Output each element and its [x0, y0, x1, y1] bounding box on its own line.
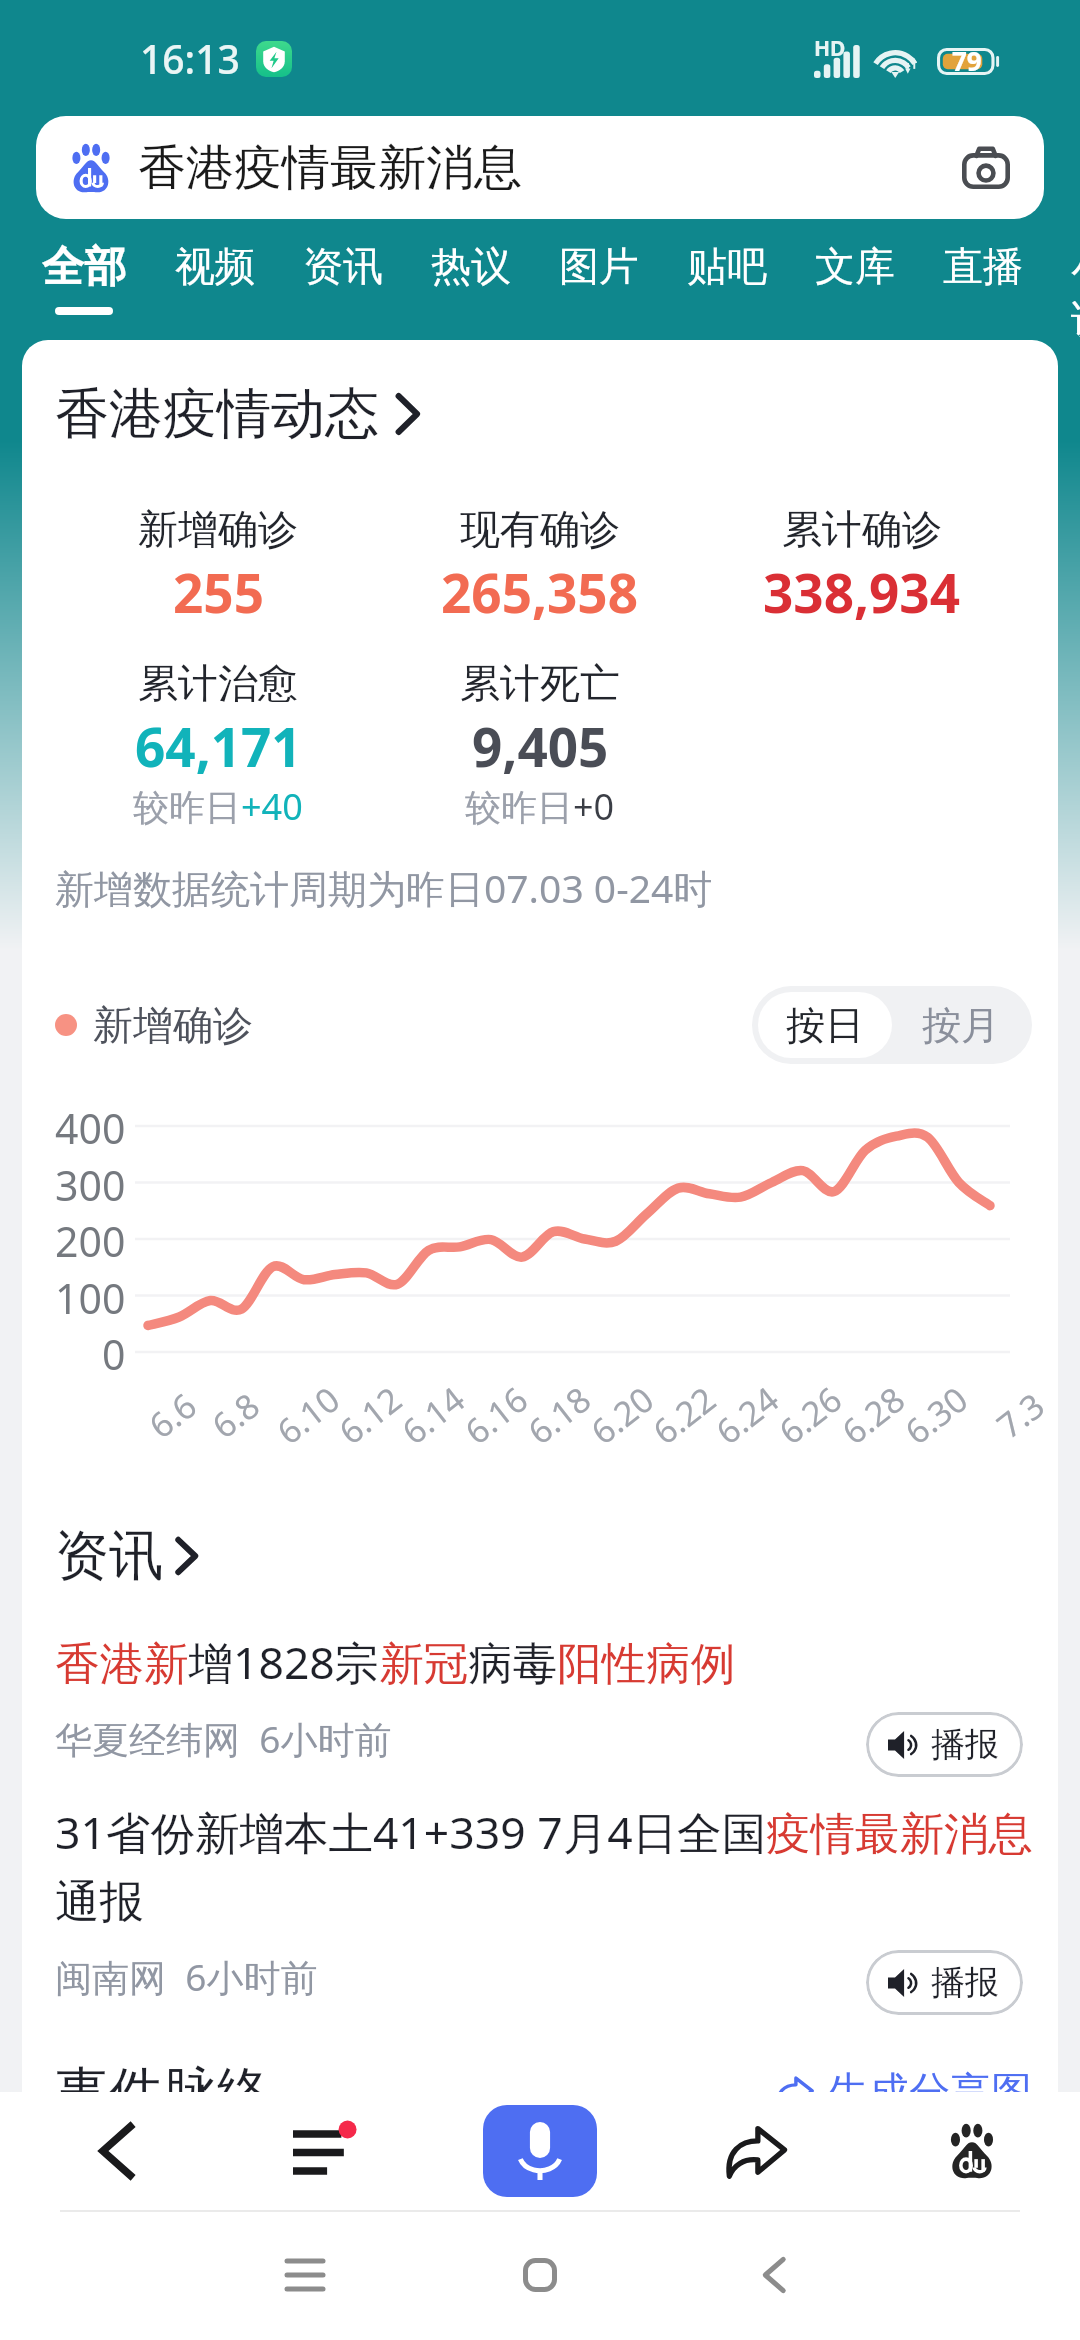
staticText: 6.22 [643, 1376, 725, 1454]
button[interactable]: Voice search [432, 2092, 648, 2210]
staticText: 0 [102, 1326, 126, 1378]
button[interactable]: 香港疫情动态 [55, 380, 419, 448]
button[interactable]: 播报 [866, 1950, 1023, 2015]
button[interactable]: 直播 [943, 226, 1023, 340]
staticText: 6.6 [139, 1382, 206, 1448]
staticText: 较昨日+0 [465, 782, 615, 831]
staticText: 华夏经纬网 6小时前 [55, 1713, 392, 1764]
staticText: 6.16 [455, 1376, 537, 1454]
staticText: 新增确诊 [138, 504, 298, 554]
staticText: 6.20 [581, 1376, 663, 1454]
staticText: 香港疫情最新消息 [138, 138, 522, 198]
staticText: 300 [55, 1157, 126, 1209]
staticText: 6.18 [518, 1376, 600, 1454]
staticText: 新增确诊 [93, 1000, 253, 1050]
staticText: 6.8 [202, 1382, 269, 1448]
staticText: 400 [55, 1100, 126, 1152]
staticText: 文库 [815, 241, 895, 291]
staticText: 按日 [786, 1001, 864, 1050]
button[interactable]: 播报 [866, 1712, 1023, 1777]
staticText: 7.3 [987, 1382, 1054, 1448]
button[interactable]: 全部 [42, 226, 126, 340]
staticText: HD [814, 34, 846, 63]
button[interactable]: 31省份新增本土41+339 7月4日全国疫情最新消息通报 [55, 1801, 1054, 2009]
button[interactable]: 文库 [815, 226, 895, 340]
staticText: 255 [173, 556, 264, 628]
staticText: 6.10 [267, 1376, 349, 1454]
staticText: 香港疫情动态 [55, 380, 379, 448]
button[interactable]: Camera search [941, 116, 1030, 219]
button[interactable]: Home [422, 2210, 657, 2340]
staticText: 6.26 [769, 1376, 851, 1454]
staticText: 小说 [1071, 241, 1080, 340]
staticText: 播报 [931, 1723, 999, 1766]
staticText: 全部 [42, 241, 126, 294]
staticText: 闽南网 6小时前 [55, 1951, 318, 2002]
staticText: 事件脉络 [55, 2059, 271, 2127]
button[interactable]: Share [648, 2092, 864, 2210]
button[interactable]: 资讯 [303, 226, 383, 340]
button[interactable]: 生成分享图 [775, 2067, 1032, 2119]
staticText: 6.12 [329, 1376, 411, 1454]
staticText: 资讯 [303, 241, 383, 291]
staticText: 香港新增1828宗新冠病毒阳性病例 [55, 1631, 736, 1692]
button[interactable]: 贴吧 [687, 226, 767, 340]
staticText: 6.28 [832, 1376, 914, 1454]
button[interactable]: Menu [216, 2092, 432, 2210]
staticText: 视频 [175, 241, 255, 291]
staticText: 6.30 [895, 1376, 977, 1454]
button[interactable]: Back [657, 2210, 892, 2340]
staticText: 338,934 [763, 556, 961, 628]
staticText: 播报 [931, 1961, 999, 2004]
staticText: 6.14 [392, 1376, 474, 1454]
button[interactable]: 热议 [431, 226, 511, 340]
button[interactable]: 视频 [175, 226, 255, 340]
staticText: 16:13 [140, 32, 240, 85]
staticText: 生成分享图 [827, 2067, 1032, 2119]
button[interactable]: Baidu home [864, 2092, 1080, 2210]
staticText: 直播 [943, 241, 1023, 291]
button[interactable]: 资讯 [55, 1522, 197, 1590]
staticText: 200 [55, 1213, 126, 1265]
button[interactable]: 按日 [758, 992, 892, 1058]
staticText: 热议 [431, 241, 511, 291]
staticText: 累计确诊 [782, 504, 942, 554]
staticText: 累计死亡 [460, 658, 620, 708]
staticText: 79 [952, 43, 982, 77]
staticText: 31省份新增本土41+339 7月4日全国疫情最新消息通报 [55, 1801, 1054, 1930]
button[interactable]: 小说 [1071, 226, 1080, 340]
button[interactable]: 按月 [898, 992, 1024, 1058]
staticText: 9,405 [472, 710, 609, 782]
button[interactable]: 香港新增1828宗新冠病毒阳性病例 [55, 1631, 1054, 1771]
staticText: 现有确诊 [460, 504, 620, 554]
staticText: 新增数据统计周期为昨日07.03 0-24时 [55, 861, 713, 914]
staticText: 累计治愈 [138, 658, 298, 708]
staticText: 64,171 [135, 710, 302, 782]
button[interactable]: 图片 [559, 226, 639, 340]
staticText: 按月 [922, 1001, 1000, 1050]
staticText: 100 [55, 1270, 126, 1322]
staticText: 6.24 [706, 1376, 788, 1454]
staticText: 资讯 [55, 1522, 163, 1590]
staticText: 265,358 [441, 556, 639, 628]
staticText: 贴吧 [687, 241, 767, 291]
button[interactable]: Recents [187, 2210, 422, 2340]
staticText: 较昨日+40 [133, 782, 303, 831]
button[interactable]: 香港疫情最新消息 [36, 116, 1044, 219]
button[interactable]: Back [0, 2092, 216, 2210]
staticText: 图片 [559, 241, 639, 291]
